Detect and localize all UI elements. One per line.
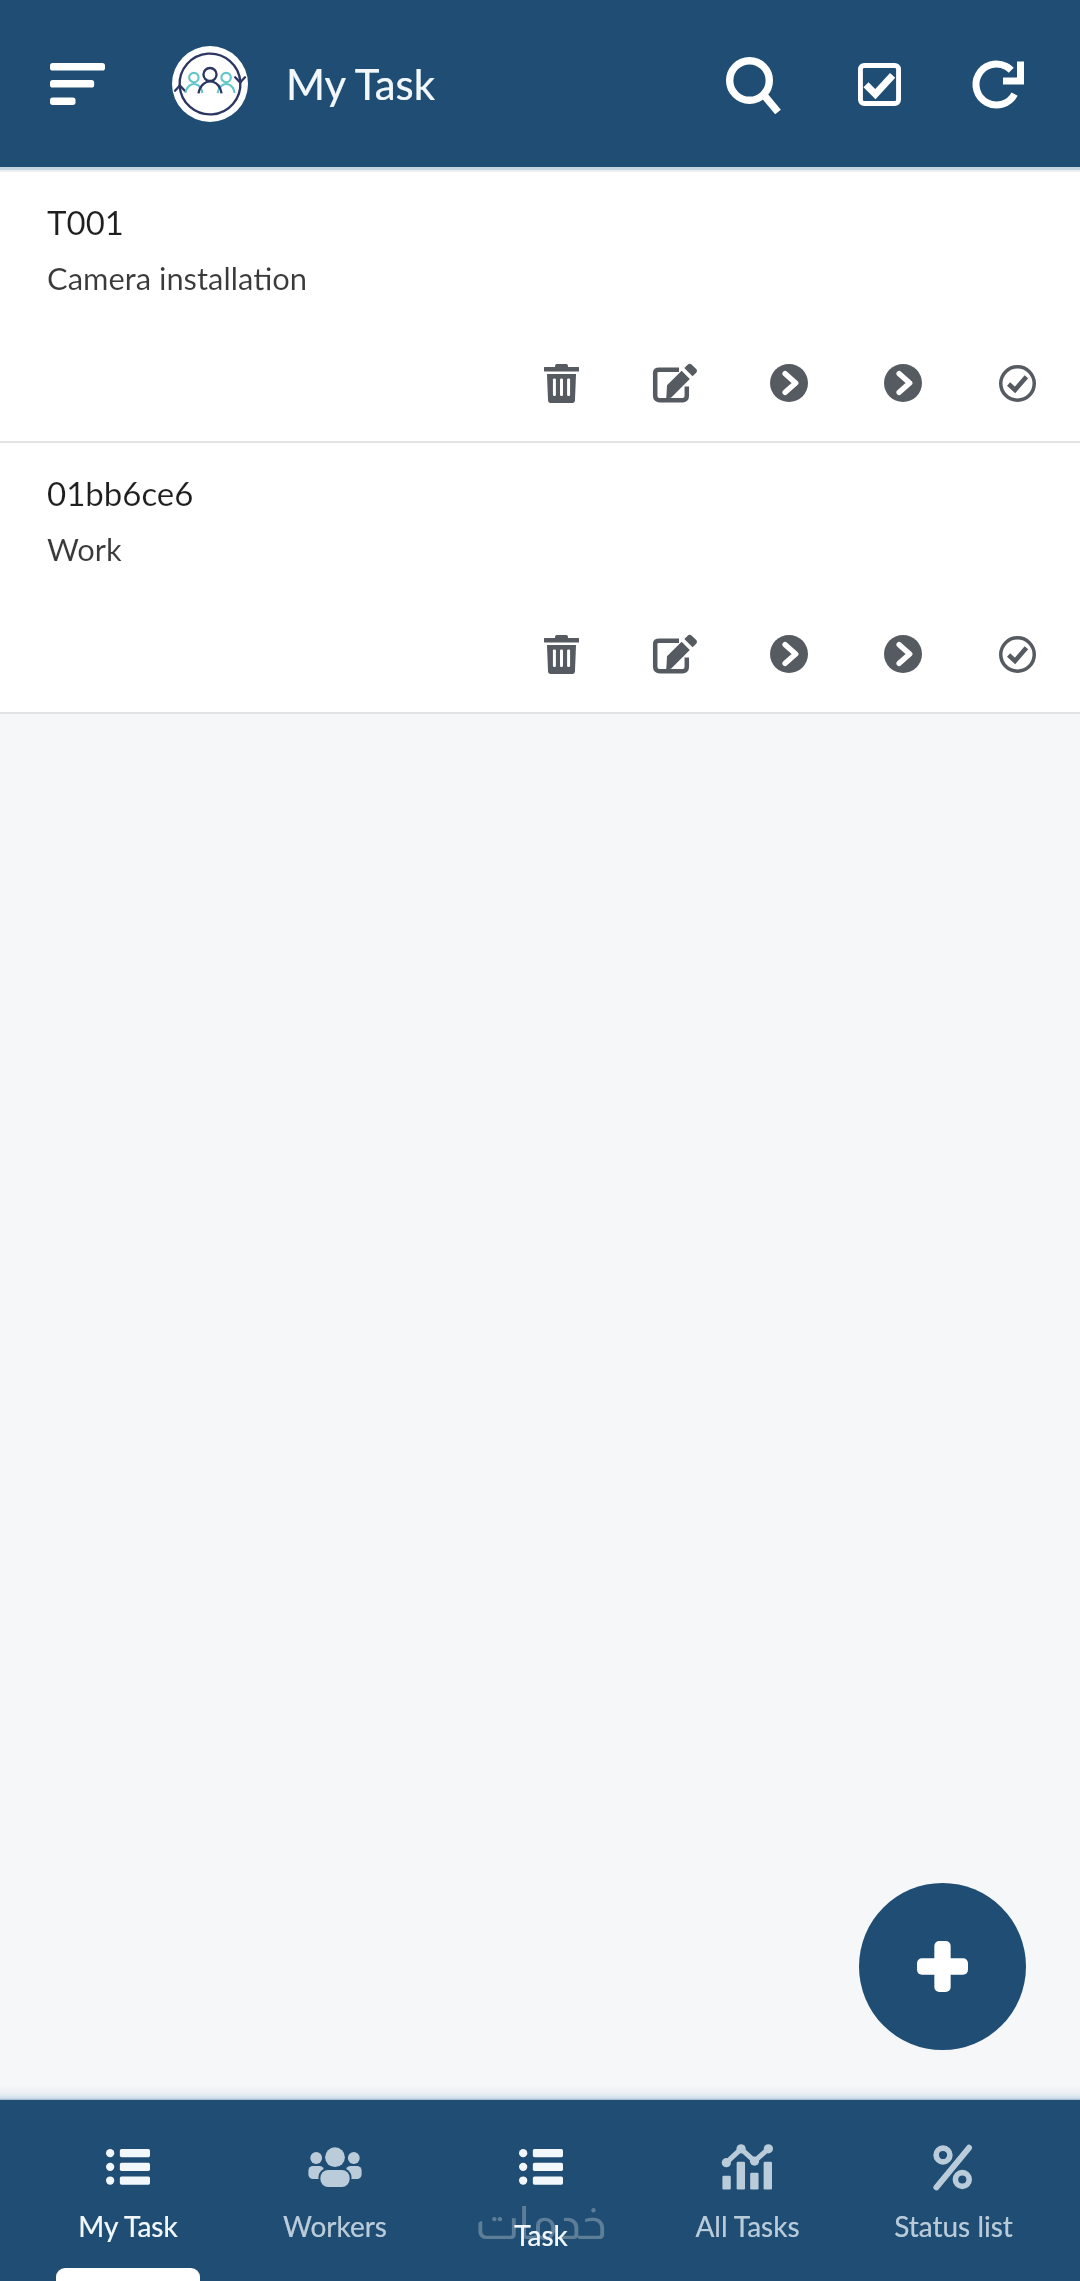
button[interactable]: My Task [24, 2100, 231, 2281]
button[interactable]: Move next [846, 597, 960, 711]
button[interactable]: Delete [504, 597, 618, 711]
staticText: Workers [283, 2209, 387, 2243]
button[interactable]: Start task [732, 326, 846, 440]
button[interactable]: Menu [5, 12, 149, 156]
staticText: 01bb6ce6 [47, 473, 194, 513]
button[interactable]: All Tasks [644, 2100, 850, 2281]
button[interactable]: Delete [504, 326, 618, 440]
staticText: My Task [78, 2209, 178, 2243]
button[interactable]: Status list [850, 2100, 1056, 2281]
button[interactable]: T001 [0, 172, 1080, 441]
button[interactable]: Edit [618, 326, 732, 440]
button[interactable]: Edit [618, 597, 732, 711]
staticText: My Task [286, 59, 436, 109]
button[interactable]: خدمات [438, 2100, 644, 2281]
button[interactable]: 01bb6ce6 [0, 443, 1080, 712]
button[interactable]: Complete [960, 597, 1074, 711]
staticText: Camera installation [47, 260, 307, 297]
button[interactable]: Refresh [928, 12, 1072, 156]
button[interactable]: Search [682, 12, 826, 156]
staticText: All Tasks [695, 2209, 800, 2243]
button[interactable]: Select all [807, 12, 951, 156]
staticText: T001 [47, 202, 124, 242]
button[interactable]: Workers [231, 2100, 438, 2281]
staticText: Status list [894, 2209, 1013, 2243]
button[interactable]: Add task [859, 1883, 1026, 2050]
button[interactable]: Complete [960, 326, 1074, 440]
staticText: خدمات [475, 2198, 607, 2249]
button[interactable]: Start task [732, 597, 846, 711]
button[interactable]: Move next [846, 326, 960, 440]
staticText: Work [47, 531, 122, 568]
staticText: Task [514, 2218, 568, 2252]
